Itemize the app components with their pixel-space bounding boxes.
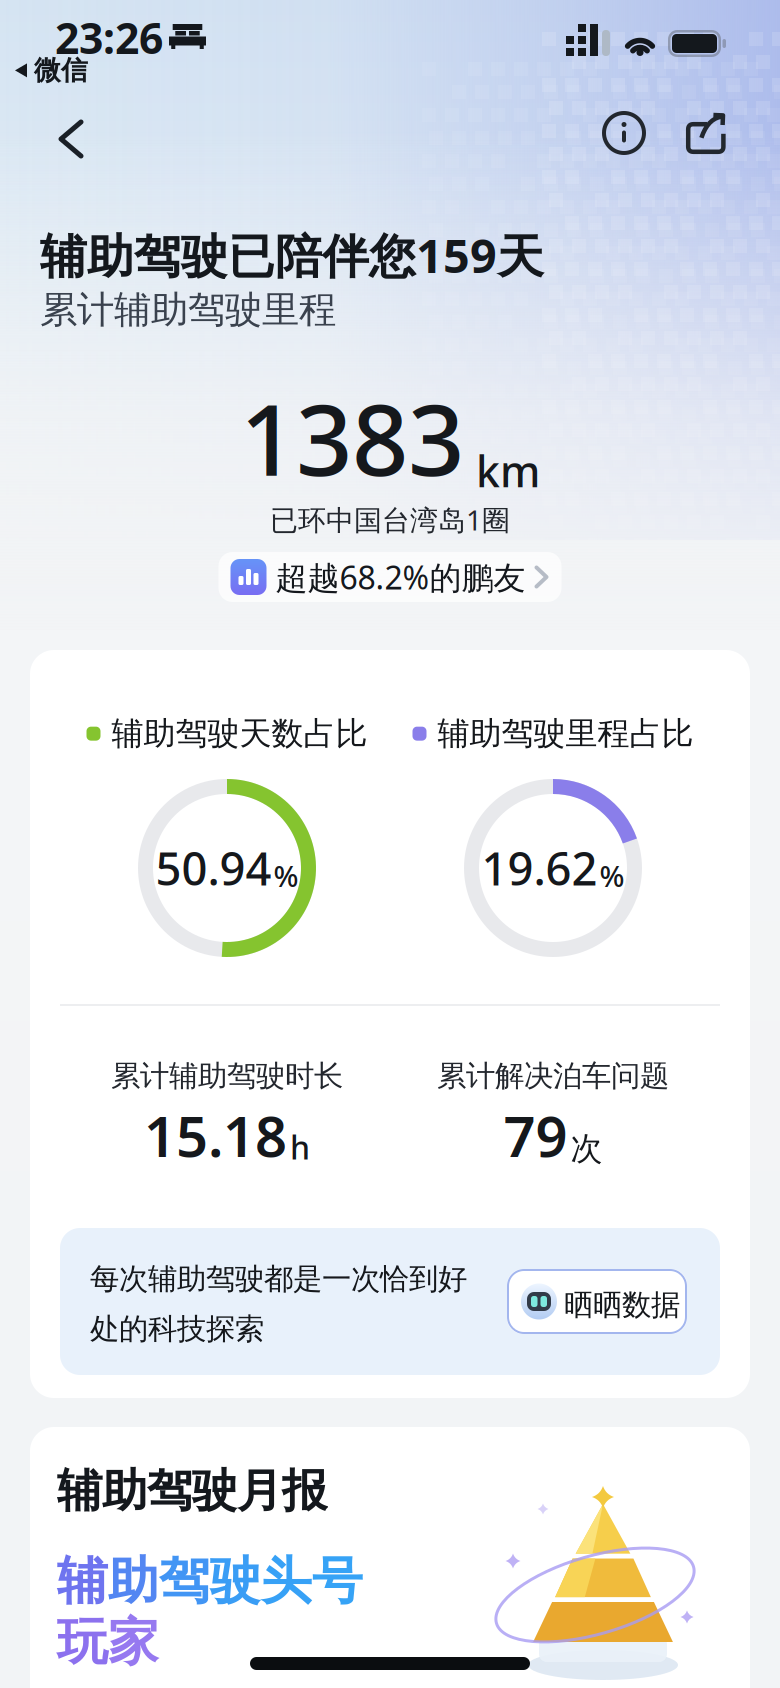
button[interactable]: Back: [49, 110, 93, 168]
staticText: 辅助驾驶已陪伴您159天: [40, 224, 544, 286]
staticText: 累计解决泊车问题: [437, 1058, 669, 1094]
staticText: 每次辅助驾驶都是一次恰到好: [90, 1261, 467, 1297]
staticText: 79: [503, 1098, 567, 1172]
staticText: 辅助驾驶月报: [57, 1463, 327, 1519]
staticText: 驶: [210, 1550, 261, 1612]
staticText: 23:26: [55, 9, 163, 66]
staticText: km: [476, 442, 540, 499]
staticText: 50.94: [155, 838, 271, 898]
staticText: 1383: [240, 372, 464, 503]
staticText: 15.18: [144, 1098, 287, 1172]
staticText: 头: [261, 1550, 312, 1612]
staticText: 家: [108, 1611, 159, 1673]
staticText: 辅: [57, 1550, 108, 1612]
button[interactable]: Share: [684, 110, 730, 156]
staticText: 辅助驾驶里程占比: [437, 714, 693, 753]
staticText: 已环中国台湾岛1圈: [270, 501, 510, 538]
staticText: h: [290, 1126, 310, 1168]
staticText: 号: [312, 1550, 363, 1612]
staticText: 驾: [159, 1550, 210, 1612]
staticText: %: [599, 856, 624, 895]
button[interactable]: 超越68.2%的鹏友: [218, 552, 561, 602]
staticText: %: [273, 856, 298, 895]
staticText: 次: [570, 1129, 602, 1168]
staticText: 累计辅助驾驶时长: [111, 1058, 343, 1094]
staticText: 累计辅助驾驶里程: [40, 287, 336, 333]
staticText: 微信: [34, 54, 88, 87]
staticText: 超越68.2%的鹏友: [275, 556, 525, 598]
staticText: 助: [108, 1550, 159, 1612]
staticText: 玩: [57, 1611, 108, 1673]
button[interactable]: 辅助驾驶月报: [30, 1427, 750, 1688]
staticText: 晒晒数据: [564, 1287, 680, 1323]
staticText: 处的科技探索: [90, 1311, 264, 1347]
button[interactable]: 晒晒数据: [507, 1269, 687, 1334]
staticText: 辅助驾驶天数占比: [111, 714, 367, 753]
staticText: 19.62: [481, 838, 597, 898]
button[interactable]: Info: [602, 111, 646, 155]
